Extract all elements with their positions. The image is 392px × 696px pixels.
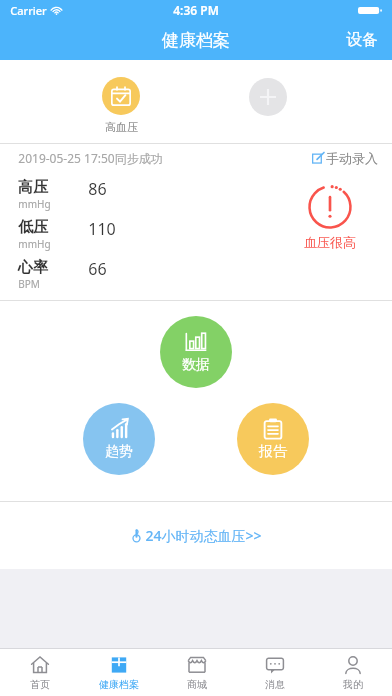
staticText: BPM [18,277,40,291]
staticText: 我的 [343,678,363,691]
button[interactable]: 健康档案 [79,649,158,696]
button[interactable]: 24小时动态血压>> [114,518,278,553]
staticText: 4:36 PM [173,2,219,18]
staticText: 高压 [18,178,48,197]
staticText: mmHg [18,237,51,251]
staticText: 手动录入 [326,150,378,166]
staticText: 110 [88,218,116,240]
button[interactable]: 设备 [332,22,392,58]
button[interactable]: 手动录入 [304,146,392,170]
staticText: 66 [88,258,107,280]
staticText: 健康档案 [99,678,139,691]
staticText: 首页 [30,678,50,691]
button[interactable]: 首页 [0,649,79,696]
staticText: 心率 [18,258,48,277]
button[interactable]: 高血压 [98,60,144,134]
staticText: 趋势 [105,443,133,461]
staticText: 健康档案 [162,30,230,51]
staticText: 血压很高 [304,234,356,250]
button[interactable]: 趋势 [83,403,155,475]
button[interactable]: Add record type [249,78,287,116]
staticText: 24小时动态血压>> [145,526,262,545]
staticText: 高血压 [105,120,138,134]
button[interactable]: 数据 [160,316,232,388]
staticText: Carrier [10,3,47,18]
button[interactable]: 商城 [158,649,236,696]
button[interactable]: Blood pressure warning [304,184,356,250]
staticText: 86 [88,178,107,200]
other: Blood pressure warning [307,184,353,230]
staticText: 商城 [187,678,207,691]
staticText: 数据 [182,356,210,374]
staticText: 设备 [346,30,378,50]
staticText: 低压 [18,218,48,237]
staticText: 2019-05-25 17:50同步成功 [18,150,163,166]
button[interactable]: 报告 [237,403,309,475]
button[interactable]: 我的 [314,649,392,696]
staticText: mmHg [18,197,51,211]
staticText: 消息 [265,678,285,691]
button[interactable]: 消息 [236,649,314,696]
staticText: 报告 [259,443,287,461]
